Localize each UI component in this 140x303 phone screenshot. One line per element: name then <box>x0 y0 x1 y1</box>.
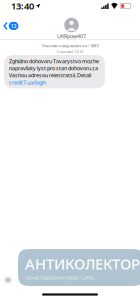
staticText: Сьогодні 13:10 <box>57 49 83 54</box>
button[interactable]: Contact <box>48 16 92 40</box>
staticText: credit7.ua/login <box>9 79 46 86</box>
button[interactable]: Back <box>0 18 24 34</box>
staticText: 12 <box>11 22 17 29</box>
staticText: Захист від колекторів • 2445 <box>25 274 94 281</box>
staticText: UKRpow407 <box>57 33 86 40</box>
staticText: Zghidno dohovoru Tovarystvo mozhe naprav… <box>9 57 99 79</box>
staticText: АНТИКОЛЕКТОР <box>25 254 140 273</box>
staticText: 13:40 <box>11 0 34 12</box>
button[interactable]: Add attachment <box>2 274 14 286</box>
staticText: Текстове повідомлення • SMS <box>41 43 98 48</box>
